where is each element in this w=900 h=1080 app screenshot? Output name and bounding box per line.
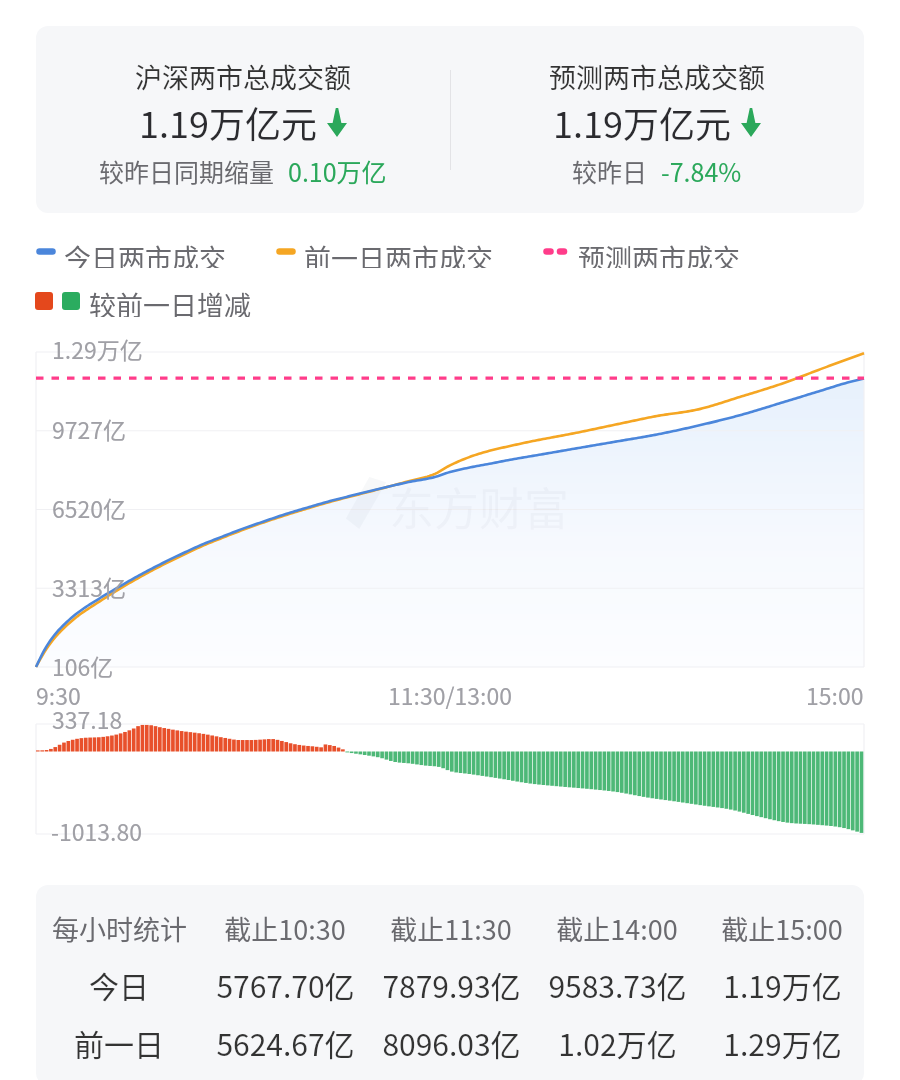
staticText: 5624.67亿 (216, 1021, 355, 1064)
staticText: 3313亿 (52, 570, 127, 603)
staticText: 1.29万亿 (52, 332, 143, 365)
staticText: 较昨日同期缩量 (99, 153, 275, 189)
staticText: 今日两市成交 (64, 238, 226, 268)
button[interactable]: 预测两市成交 (543, 238, 705, 268)
button[interactable]: 沪深两市总成交额 (36, 26, 450, 213)
button[interactable]: 沪深两市总成交额 (36, 26, 864, 213)
staticText: 8096.03亿 (382, 1021, 521, 1064)
staticText: 337.18 (52, 702, 123, 735)
staticText: 前一日两市成交 (304, 238, 493, 268)
staticText: 106亿 (52, 649, 114, 682)
staticText: 9:30 (36, 678, 81, 711)
staticText: 9727亿 (52, 412, 127, 445)
other: Decrease (741, 108, 761, 137)
staticText: 截止11:30 (390, 909, 512, 948)
staticText: 1.19万亿元 (139, 96, 317, 148)
staticText: 1.19万亿 (723, 963, 842, 1006)
staticText: 11:30/13:00 (388, 678, 512, 711)
button[interactable]: 较前一日增减 (35, 285, 197, 317)
staticText: 6520亿 (52, 491, 127, 524)
staticText: -7.84% (661, 153, 742, 189)
staticText: 东方财富 (389, 474, 570, 539)
staticText: 5767.70亿 (216, 963, 355, 1006)
staticText: 1.02万亿 (558, 1021, 677, 1064)
button[interactable]: 前一日两市成交 (276, 238, 465, 268)
staticText: 前一日 (74, 1021, 164, 1064)
button[interactable]: 预测两市总成交额 (450, 26, 864, 213)
staticText: 1.29万亿 (723, 1021, 842, 1064)
staticText: 预测两市总成交额 (549, 57, 765, 96)
staticText: 预测两市成交 (578, 238, 740, 268)
staticText: 9583.73亿 (548, 963, 687, 1006)
staticText: 较昨日 (572, 153, 648, 189)
staticText: 截止14:00 (556, 909, 678, 948)
button[interactable]: 今日两市成交 (36, 238, 198, 268)
staticText: 较前一日增减 (89, 285, 251, 317)
staticText: 截止10:30 (224, 909, 346, 948)
staticText: -1013.80 (51, 814, 142, 847)
staticText: 今日 (89, 963, 149, 1006)
staticText: 15:00 (806, 678, 864, 711)
staticText: 每小时统计 (52, 909, 187, 948)
staticText: 0.10万亿 (288, 153, 387, 189)
other: Decrease (327, 108, 347, 137)
button[interactable]: 每小时统计 (36, 885, 864, 1080)
staticText: 7879.93亿 (382, 963, 521, 1006)
staticText: 1.19万亿元 (553, 96, 731, 148)
staticText: 截止15:00 (721, 909, 843, 948)
staticText: 沪深两市总成交额 (135, 57, 351, 96)
